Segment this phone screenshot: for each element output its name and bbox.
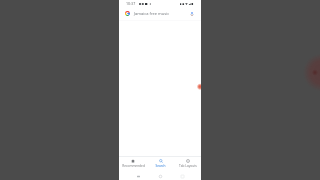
- button[interactable]: Back: [134, 173, 142, 179]
- staticText: Tab Layouts: [179, 164, 197, 168]
- staticText: Recommended: [122, 164, 145, 168]
- button[interactable]: Home: [156, 173, 164, 179]
- staticText: Search: [155, 164, 166, 168]
- staticText: Jamaica free music: [134, 11, 170, 16]
- staticText: 10:37: [126, 1, 136, 6]
- button[interactable]: Jamaica free music: [122, 8, 198, 19]
- button[interactable]: Recent apps: [178, 173, 186, 179]
- button[interactable]: Recommended: [119, 157, 147, 169]
- button[interactable]: Tab Layouts: [174, 157, 201, 169]
- button[interactable]: Search: [147, 157, 174, 169]
